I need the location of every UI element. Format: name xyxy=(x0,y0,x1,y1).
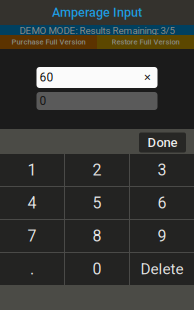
staticText: . xyxy=(30,260,34,278)
button[interactable]: Purchase Full Version xyxy=(0,35,97,49)
staticText: DEMO MODE: Results Remaining: 3/5 xyxy=(19,25,174,35)
button[interactable]: 6 xyxy=(130,187,194,219)
button[interactable]: Restore Full Version xyxy=(97,35,194,49)
staticText: 2 xyxy=(92,161,101,179)
staticText: 7 xyxy=(27,227,36,245)
staticText: 3 xyxy=(157,161,166,179)
button[interactable]: . xyxy=(0,253,64,285)
staticText: Done xyxy=(147,135,177,150)
staticText: Purchase Full Version xyxy=(11,37,85,46)
button[interactable]: 7 xyxy=(0,220,64,252)
staticText: 6 xyxy=(157,194,166,212)
button[interactable]: 5 xyxy=(65,187,129,219)
button[interactable]: 9 xyxy=(130,220,194,252)
staticText: 60 xyxy=(39,70,53,85)
staticText: ✕ xyxy=(143,72,151,83)
staticText: 0 xyxy=(92,260,101,278)
button[interactable]: Delete xyxy=(130,253,194,285)
button[interactable]: 0 xyxy=(65,253,129,285)
staticText: 4 xyxy=(27,194,36,212)
button[interactable]: 4 xyxy=(0,187,64,219)
staticText: 9 xyxy=(157,227,166,245)
staticText: Amperage Input xyxy=(52,5,142,20)
button[interactable]: 8 xyxy=(65,220,129,252)
staticText: Delete xyxy=(140,260,183,278)
staticText: Restore Full Version xyxy=(111,37,179,46)
button[interactable]: 2 xyxy=(65,154,129,186)
button[interactable]: Done xyxy=(139,132,186,152)
button[interactable]: 3 xyxy=(130,154,194,186)
staticText: 1 xyxy=(27,161,36,179)
button[interactable]: 1 xyxy=(0,154,64,186)
staticText: 5 xyxy=(92,194,101,212)
button[interactable]: Clear text xyxy=(141,67,153,88)
staticText: 0 xyxy=(39,94,46,108)
staticText: 8 xyxy=(92,227,101,245)
